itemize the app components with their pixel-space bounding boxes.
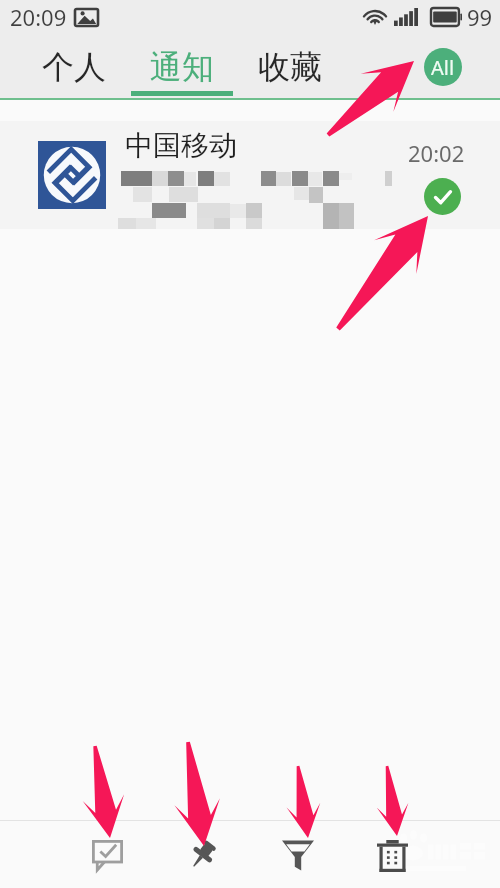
button[interactable]: 通知 bbox=[128, 34, 236, 98]
button[interactable]: Filter bbox=[268, 821, 328, 888]
button[interactable]: Pin bbox=[174, 821, 231, 888]
button[interactable]: 中国移动 bbox=[0, 121, 500, 229]
button[interactable]: All bbox=[424, 48, 462, 86]
button[interactable]: 收藏 bbox=[236, 34, 344, 98]
staticText: 通知 bbox=[150, 47, 214, 87]
button[interactable]: Delete bbox=[363, 821, 422, 888]
staticText: 收藏 bbox=[258, 47, 322, 87]
button[interactable]: Mark as read bbox=[78, 821, 137, 888]
button[interactable]: Mark as read bbox=[424, 178, 461, 215]
staticText: All bbox=[431, 54, 455, 81]
staticText: 个人 bbox=[42, 47, 106, 87]
staticText: 99 bbox=[467, 2, 493, 32]
staticText: 中国移动 bbox=[125, 128, 237, 163]
staticText: 20:09 bbox=[10, 2, 67, 32]
button[interactable]: 个人 bbox=[20, 34, 128, 98]
staticText: 20:02 bbox=[408, 138, 465, 168]
